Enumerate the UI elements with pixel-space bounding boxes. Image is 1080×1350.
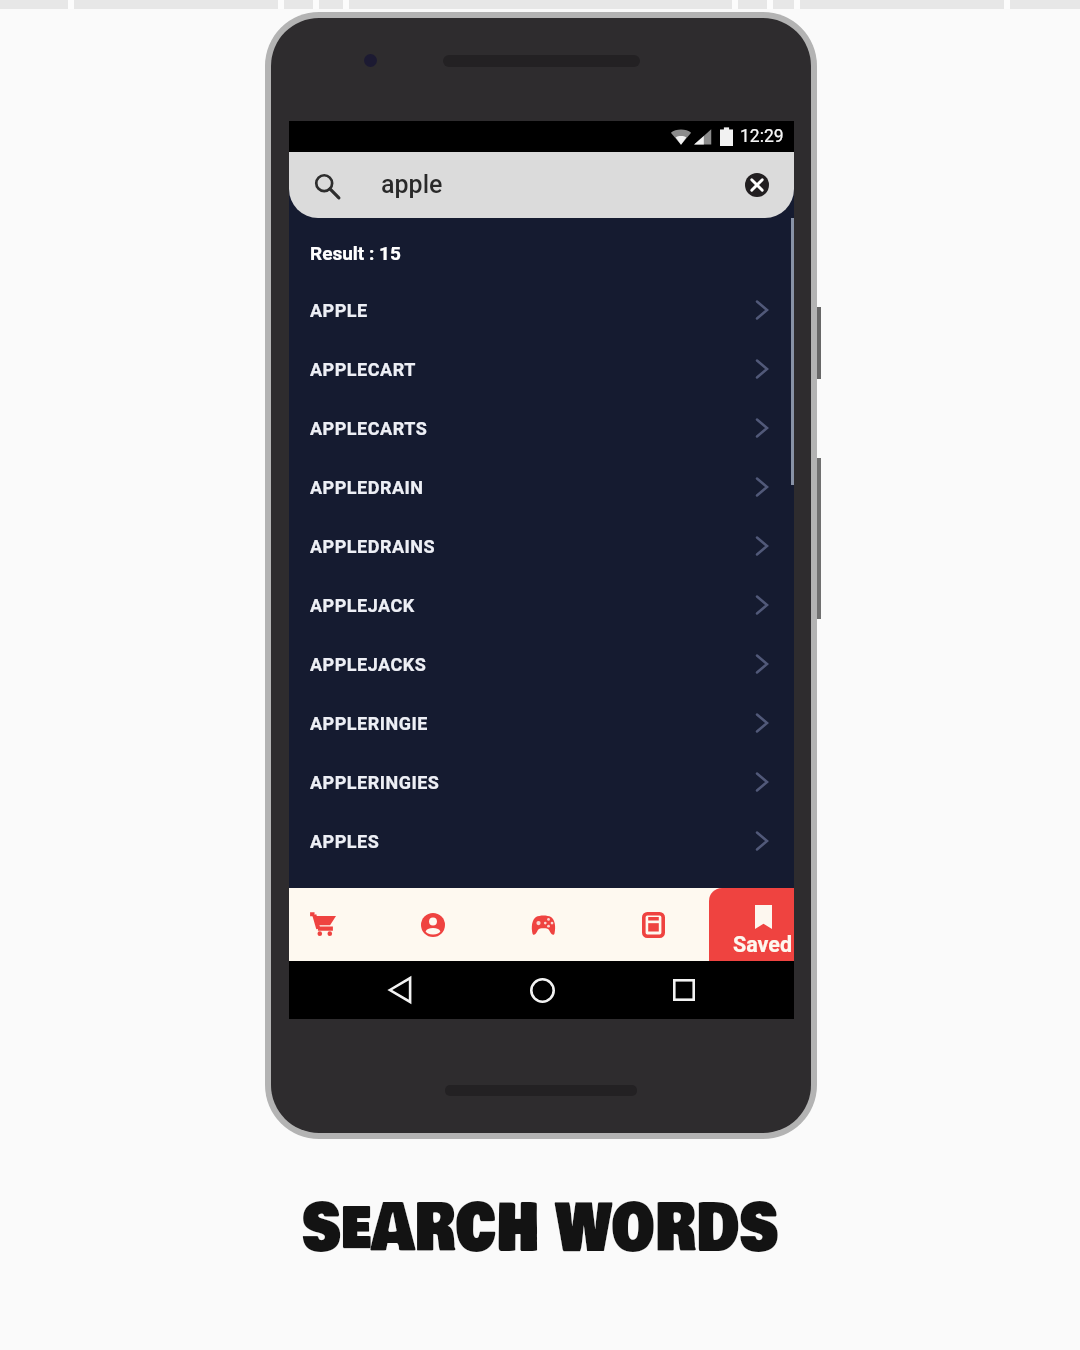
button[interactable]: APPLE bbox=[289, 281, 794, 340]
button[interactable]: APPLEJACKS bbox=[289, 635, 794, 694]
button[interactable]: Back bbox=[371, 961, 429, 1019]
staticText: 12:29 bbox=[740, 126, 784, 147]
button[interactable]: APPLEJACK bbox=[289, 576, 794, 635]
staticText: APPLEJACKS bbox=[310, 654, 427, 675]
button[interactable]: Clear search bbox=[745, 173, 769, 197]
button[interactable]: Home bbox=[513, 961, 571, 1019]
staticText: APPLEDRAINS bbox=[310, 536, 436, 557]
button[interactable]: APPLECARTS bbox=[289, 399, 794, 458]
button[interactable]: Dictionary bbox=[598, 888, 708, 961]
button[interactable]: APPLECART bbox=[289, 340, 794, 399]
button[interactable]: Account bbox=[378, 888, 488, 961]
button[interactable]: Search bbox=[289, 152, 794, 218]
button[interactable]: Shopping cart bbox=[289, 888, 377, 961]
staticText: APPLECARTS bbox=[310, 418, 428, 439]
staticText: APPLEJACK bbox=[310, 595, 415, 616]
staticText: APPLE bbox=[310, 300, 368, 321]
staticText: Result : 15 bbox=[310, 242, 401, 264]
staticText: SeARCH WORDS bbox=[301, 1180, 778, 1278]
staticText: APPLERINGIE bbox=[310, 713, 428, 734]
button[interactable]: Recent apps bbox=[655, 961, 713, 1019]
staticText: APPLEDRAIN bbox=[310, 477, 424, 498]
button[interactable]: APPLERINGIES bbox=[289, 753, 794, 812]
other: Search bbox=[315, 174, 338, 197]
button[interactable]: Games bbox=[488, 888, 598, 961]
staticText: apple bbox=[381, 170, 443, 199]
staticText: APPLECART bbox=[310, 359, 416, 380]
staticText: APPLES bbox=[310, 831, 380, 852]
staticText: APPLERINGIES bbox=[310, 772, 440, 793]
button[interactable]: APPLERINGIE bbox=[289, 694, 794, 753]
button[interactable]: APPLEDRAINS bbox=[289, 517, 794, 576]
button[interactable]: APPLEDRAIN bbox=[289, 458, 794, 517]
staticText: Saved bbox=[733, 932, 793, 957]
button[interactable]: APPLES bbox=[289, 812, 794, 871]
button[interactable]: Saved bbox=[709, 888, 794, 961]
